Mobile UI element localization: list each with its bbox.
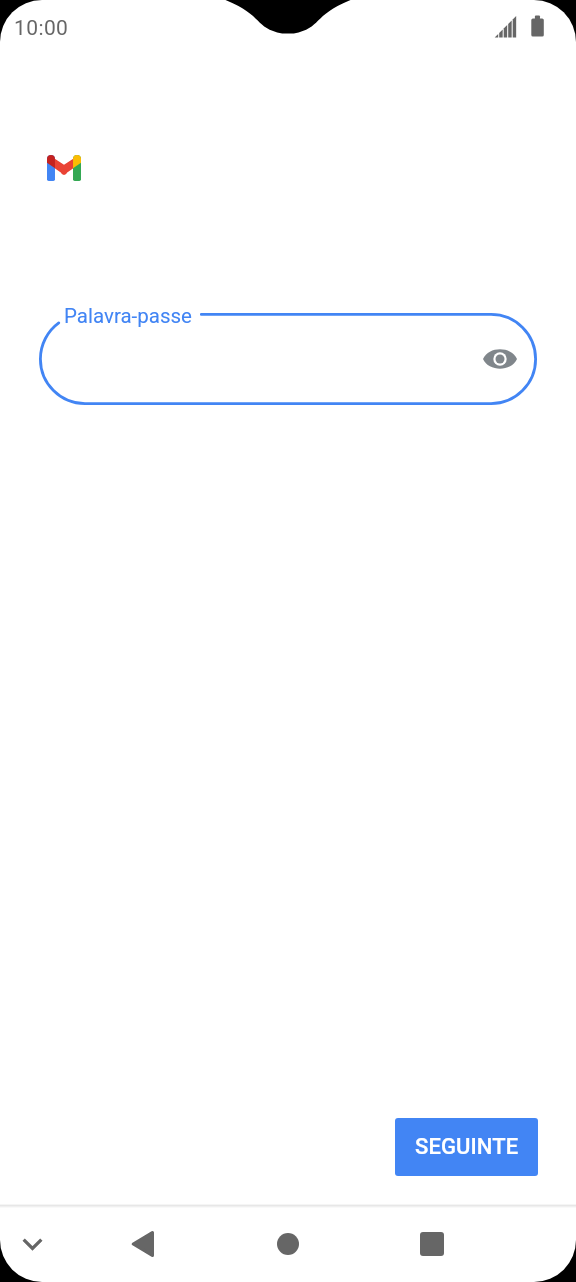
button[interactable]: SEGUINTE bbox=[395, 1118, 538, 1176]
staticText: Palavra-passe bbox=[64, 304, 192, 328]
button[interactable]: Anterior bbox=[119, 1220, 167, 1268]
button[interactable]: Recentes bbox=[408, 1220, 456, 1268]
staticText: SEGUINTE bbox=[415, 1134, 519, 1160]
button[interactable]: Início bbox=[264, 1220, 312, 1268]
button[interactable]: Ocultar teclado bbox=[8, 1220, 56, 1268]
staticText: 10:00 bbox=[14, 16, 69, 41]
button[interactable]: Mostrar palavra-passe bbox=[476, 335, 524, 383]
button[interactable] bbox=[39, 313, 537, 405]
